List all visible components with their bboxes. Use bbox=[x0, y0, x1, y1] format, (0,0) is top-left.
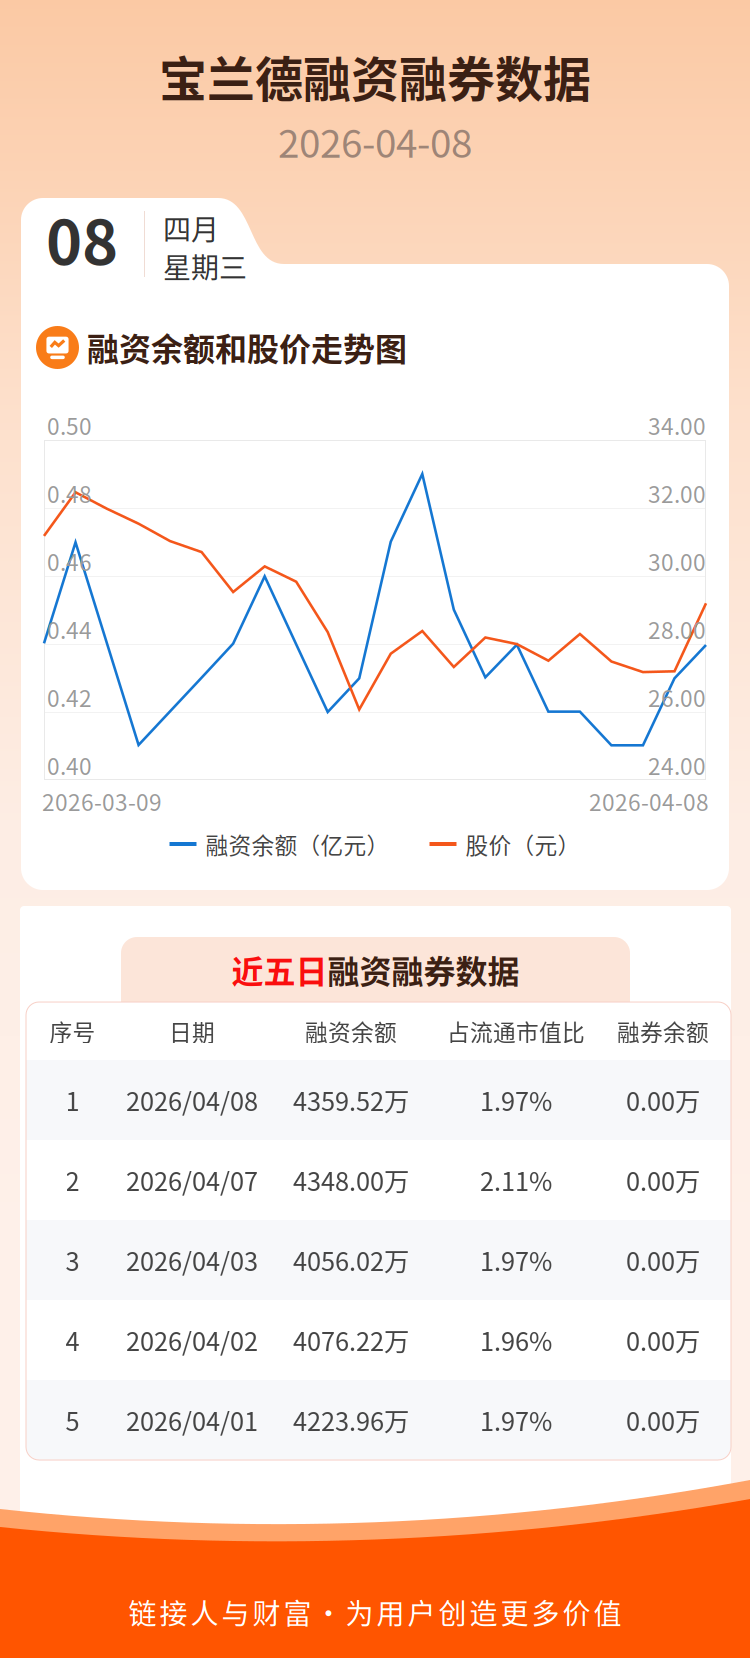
staticText: 日期 bbox=[169, 1015, 215, 1047]
staticText: 宝兰德融资融券数据 bbox=[159, 41, 591, 111]
staticText: 占流通市值比 bbox=[447, 1015, 585, 1047]
staticText: 1.97% bbox=[480, 1242, 552, 1278]
staticText: 融资余额 bbox=[305, 1015, 397, 1047]
staticText: 4 bbox=[65, 1322, 79, 1358]
staticText: 4223.96万 bbox=[293, 1402, 409, 1438]
staticText: 2026/04/02 bbox=[126, 1322, 258, 1358]
staticText: 30.00 bbox=[648, 545, 706, 577]
staticText: 0.00万 bbox=[626, 1322, 700, 1358]
staticText: 2 bbox=[65, 1162, 79, 1198]
staticText: 0.44 bbox=[47, 613, 92, 645]
staticText: 融资余额和股价走势图 bbox=[87, 324, 407, 370]
staticText: 融资融券数据 bbox=[327, 946, 519, 993]
staticText: 08 bbox=[46, 194, 118, 282]
staticText: 4348.00万 bbox=[293, 1162, 409, 1198]
staticText: 近五日 bbox=[231, 946, 327, 993]
staticText: 0.00万 bbox=[626, 1082, 700, 1118]
staticText: 0.00万 bbox=[626, 1242, 700, 1278]
staticText: 融券余额 bbox=[617, 1015, 709, 1047]
staticText: 4359.52万 bbox=[293, 1082, 409, 1118]
staticText: 1.97% bbox=[480, 1082, 552, 1118]
staticText: 1.96% bbox=[480, 1322, 552, 1358]
staticText: 2026/04/03 bbox=[126, 1242, 258, 1278]
staticText: 股价（元） bbox=[465, 828, 580, 860]
staticText: 四月 bbox=[163, 208, 219, 248]
staticText: 0.40 bbox=[47, 749, 92, 781]
staticText: 34.00 bbox=[648, 409, 706, 441]
staticText: 0.46 bbox=[47, 545, 92, 577]
staticText: 2026/04/08 bbox=[126, 1082, 258, 1118]
staticText: 2026/04/01 bbox=[126, 1402, 258, 1438]
staticText: 0.00万 bbox=[626, 1162, 700, 1198]
staticText: 1.97% bbox=[480, 1402, 552, 1438]
staticText: 融资余额（亿元） bbox=[205, 828, 389, 860]
staticText: 2026-03-09 bbox=[42, 785, 162, 817]
staticText: 0.00万 bbox=[626, 1402, 700, 1438]
staticText: 4076.22万 bbox=[293, 1322, 409, 1358]
staticText: 28.00 bbox=[648, 613, 706, 645]
staticText: 链接人与财富·为用户创造更多价值 bbox=[128, 1592, 621, 1632]
staticText: 星期三 bbox=[163, 246, 247, 286]
staticText: 1 bbox=[65, 1082, 79, 1118]
staticText: 0.48 bbox=[47, 477, 92, 509]
staticText: 0.50 bbox=[47, 409, 92, 441]
staticText: 32.00 bbox=[648, 477, 706, 509]
staticText: 3 bbox=[65, 1242, 79, 1278]
staticText: 5 bbox=[65, 1402, 79, 1438]
staticText: 2026-04-08 bbox=[278, 113, 472, 169]
staticText: 26.00 bbox=[648, 681, 706, 713]
staticText: 0.42 bbox=[47, 681, 92, 713]
staticText: 2026/04/07 bbox=[126, 1162, 258, 1198]
staticText: 序号 bbox=[49, 1015, 95, 1047]
staticText: 2026-04-08 bbox=[589, 785, 709, 817]
staticText: 24.00 bbox=[648, 749, 706, 781]
staticText: 2.11% bbox=[480, 1162, 552, 1198]
staticText: 4056.02万 bbox=[293, 1242, 409, 1278]
